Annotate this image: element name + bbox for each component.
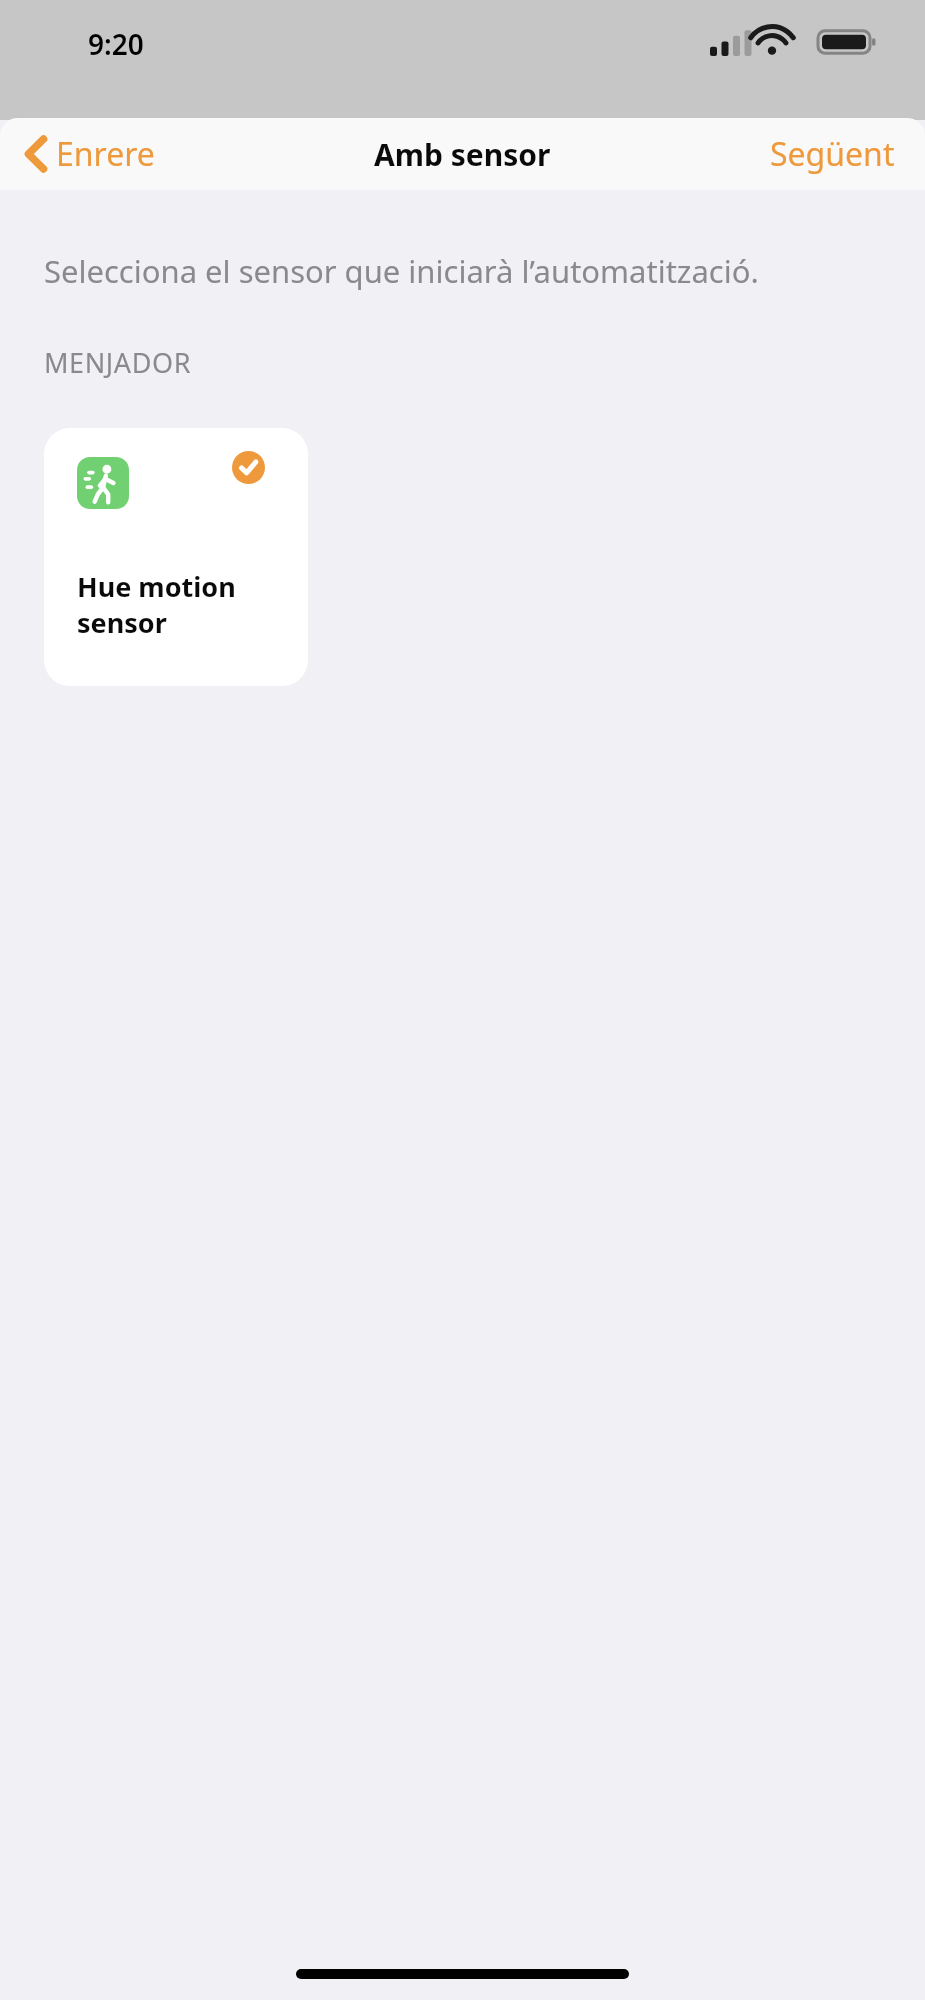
staticText: Amb sensor [374,134,551,175]
staticText: Selecciona el sensor que iniciarà l’auto… [44,250,759,292]
button[interactable]: Següent [764,126,901,182]
staticText: Enrere [56,132,155,176]
staticText: MENJADOR [44,344,192,381]
button[interactable]: Enrere [20,126,161,182]
button[interactable]: Hue motion sensor [44,428,308,686]
staticText: Hue motion sensor [77,568,267,641]
staticText: 9:20 [88,25,144,63]
staticText: Següent [770,132,895,176]
